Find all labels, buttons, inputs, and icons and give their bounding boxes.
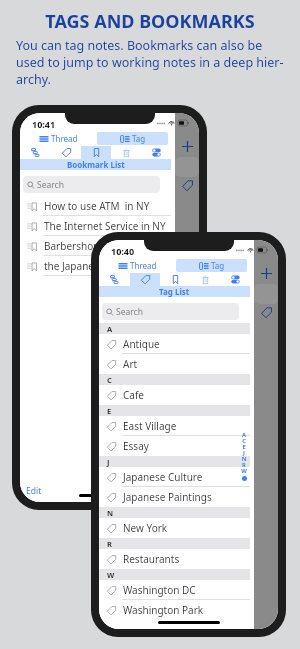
button[interactable]: Barbershops in NY <box>20 236 171 256</box>
button[interactable]: Washington DC <box>99 580 250 600</box>
button[interactable]: Delete <box>190 273 220 286</box>
staticText: A <box>107 324 113 334</box>
staticText: 10:41 <box>32 118 56 130</box>
staticText: the Japanese restaurants <box>44 259 161 273</box>
staticText: 10:40 <box>111 245 135 257</box>
button[interactable]: Edit <box>26 485 42 497</box>
button[interactable]: Japanese Paintings <box>99 487 250 507</box>
button[interactable]: Washington Park <box>99 600 250 620</box>
other: Add <box>182 141 193 152</box>
button[interactable]: Art <box>99 354 250 374</box>
staticText: Search <box>37 179 64 191</box>
button[interactable]: Japanese Culture <box>99 467 250 487</box>
staticText: Thread <box>130 260 157 271</box>
staticText: A C E J N R W <box>241 431 247 474</box>
staticText: Washington DC <box>123 583 196 597</box>
button[interactable]: Delete <box>111 146 141 159</box>
staticText: Tag List <box>159 286 190 297</box>
staticText: E <box>107 406 112 416</box>
staticText: You can tag notes. Bookmarks can also be… <box>16 37 296 88</box>
staticText: Art <box>123 357 138 371</box>
staticText: Japanese Paintings <box>123 490 212 504</box>
button[interactable]: Tag <box>97 132 168 145</box>
staticText: Search <box>116 306 143 318</box>
staticText: Cafe <box>123 388 145 402</box>
button[interactable]: Bookmarks <box>160 273 190 286</box>
button[interactable]: East Village <box>99 416 250 436</box>
staticText: N <box>107 508 114 518</box>
staticText: How to use ATM in NY <box>44 199 150 213</box>
button[interactable]: Restaurants <box>99 549 250 569</box>
other: Add <box>261 268 272 279</box>
button[interactable]: Search <box>27 176 160 193</box>
button[interactable]: the Japanese restaurants <box>20 256 171 276</box>
staticText: Antique <box>123 337 160 351</box>
staticText: R <box>107 539 112 549</box>
staticText: The Internet Service in NY <box>44 219 166 233</box>
button[interactable]: New York <box>99 518 250 538</box>
staticText: East Village <box>123 419 177 433</box>
button[interactable]: Tags <box>130 273 160 286</box>
button[interactable]: Essay <box>99 436 250 456</box>
staticText: W <box>107 570 115 580</box>
staticText: Barbershops in NY <box>44 239 132 253</box>
staticText: Essay <box>123 439 149 453</box>
staticText: Washington Park <box>123 603 204 617</box>
button[interactable]: Search <box>106 303 239 320</box>
staticText: Tag <box>132 133 146 144</box>
staticText: TAGS AND BOOKMARKS <box>0 9 300 34</box>
button[interactable]: Thread <box>102 259 173 272</box>
button[interactable]: Thread <box>23 132 94 145</box>
staticText: Tag <box>211 260 225 271</box>
staticText: Bookmark List <box>67 159 125 170</box>
button[interactable]: Cafe <box>99 385 250 405</box>
button[interactable]: Settings <box>141 146 171 159</box>
button[interactable]: Hierarchy <box>99 273 130 286</box>
button[interactable]: Settings <box>220 273 250 286</box>
staticText: C <box>107 375 112 385</box>
button[interactable]: Bookmarks <box>81 146 111 159</box>
staticText: Thread <box>51 133 78 144</box>
staticText: Restaurants <box>123 552 180 566</box>
button[interactable]: Tag <box>176 259 247 272</box>
button[interactable]: Tags <box>51 146 81 159</box>
staticText: New York <box>123 521 168 535</box>
button[interactable]: How to use ATM in NY <box>20 196 171 216</box>
button[interactable]: The Internet Service in NY <box>20 216 171 236</box>
button[interactable]: Hierarchy <box>20 146 51 159</box>
staticText: J <box>107 457 110 467</box>
staticText: Japanese Culture <box>123 470 203 484</box>
button[interactable]: Antique <box>99 334 250 354</box>
